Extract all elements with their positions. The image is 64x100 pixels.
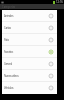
- button[interactable]: Nuevos videos: [2, 70, 57, 82]
- button[interactable]: Favoritos: [2, 46, 57, 58]
- other: Favoritos selected: [48, 49, 54, 55]
- button[interactable]: Caritas: [2, 22, 57, 34]
- staticText: Patis: [4, 38, 9, 42]
- other: Patis: [48, 37, 54, 43]
- button[interactable]: Vehículos: [2, 82, 57, 94]
- staticText: Caritas: [4, 26, 11, 30]
- other: General: [48, 61, 54, 67]
- staticText: Favoritos: [4, 50, 13, 54]
- staticText: Nuevos videos: [4, 74, 19, 78]
- staticText: Animales: [4, 14, 14, 18]
- other: Vehículos: [48, 85, 54, 91]
- other: Caritas: [48, 25, 54, 31]
- button[interactable]: Patis: [2, 34, 57, 46]
- staticText: Vehículos: [4, 86, 14, 90]
- staticText: Categorías: [2, 5, 16, 9]
- other: Nuevos videos: [48, 73, 54, 79]
- other: Animales: [48, 13, 54, 19]
- button[interactable]: General: [2, 58, 57, 70]
- button[interactable]: Animales: [2, 10, 57, 22]
- staticText: General: [4, 62, 12, 66]
- staticText: 12:16: [56, 0, 63, 4]
